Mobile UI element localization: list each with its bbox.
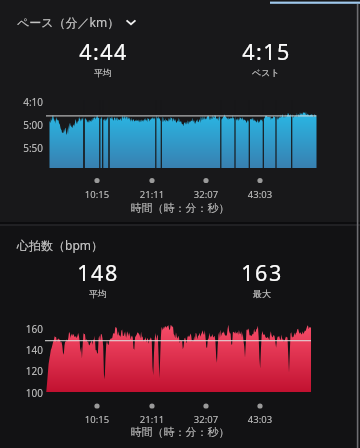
staticText: 120 bbox=[0, 364, 43, 378]
staticText: 4:15 bbox=[242, 37, 291, 66]
staticText: 100 bbox=[0, 386, 43, 400]
staticText: 43:03 bbox=[240, 413, 280, 426]
staticText: 心拍数（bpm） bbox=[17, 237, 103, 253]
staticText: 平均 bbox=[89, 288, 107, 299]
staticText: 163 bbox=[241, 258, 283, 287]
staticText: 43:03 bbox=[240, 188, 280, 201]
other: Change metric bbox=[123, 14, 139, 30]
staticText: 5:50 bbox=[0, 141, 43, 155]
staticText: ベスト bbox=[252, 67, 280, 78]
staticText: 5:00 bbox=[0, 118, 43, 132]
staticText: 10:15 bbox=[77, 188, 117, 201]
staticText: 32:07 bbox=[186, 413, 226, 426]
staticText: 140 bbox=[0, 343, 43, 357]
staticText: 時間（時：分：秒） bbox=[0, 201, 360, 215]
button[interactable]: 心拍数（bpm） bbox=[17, 237, 103, 253]
staticText: 148 bbox=[77, 258, 119, 287]
staticText: 32:07 bbox=[186, 188, 226, 201]
staticText: 4:44 bbox=[79, 37, 128, 66]
staticText: 時間（時：分：秒） bbox=[0, 425, 360, 439]
staticText: 21:11 bbox=[132, 188, 172, 201]
staticText: 平均 bbox=[94, 67, 112, 78]
staticText: 4:10 bbox=[0, 95, 43, 109]
staticText: 21:11 bbox=[132, 413, 172, 426]
staticText: ペース（分／km） bbox=[17, 14, 120, 30]
staticText: 160 bbox=[0, 322, 43, 336]
staticText: 最大 bbox=[253, 288, 271, 299]
staticText: 10:15 bbox=[77, 413, 117, 426]
button[interactable]: ペース（分／km） bbox=[17, 14, 139, 30]
